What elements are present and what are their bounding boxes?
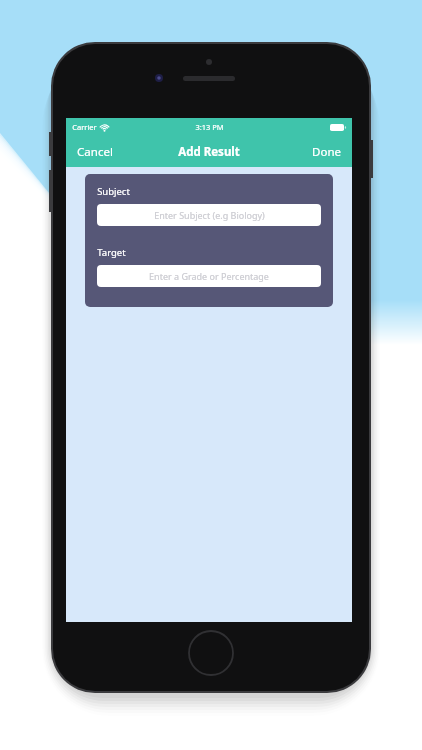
- other: Home: [188, 630, 234, 676]
- staticText: Add Result: [178, 144, 240, 160]
- staticText: Enter a Grade or Percentage: [149, 270, 269, 282]
- button[interactable]: Cancel: [66, 136, 124, 167]
- staticText: Carrier: [72, 122, 97, 132]
- staticText: Target: [97, 246, 126, 259]
- staticText: 3:13 PM: [195, 122, 224, 132]
- staticText: Cancel: [77, 144, 113, 160]
- staticText: Subject: [97, 185, 130, 198]
- staticText: Enter Subject (e.g Biology): [154, 209, 265, 221]
- button[interactable]: Enter Subject (e.g Biology): [97, 204, 321, 226]
- staticText: Done: [312, 144, 341, 160]
- button[interactable]: Enter a Grade or Percentage: [97, 265, 321, 287]
- button[interactable]: Done: [301, 136, 352, 167]
